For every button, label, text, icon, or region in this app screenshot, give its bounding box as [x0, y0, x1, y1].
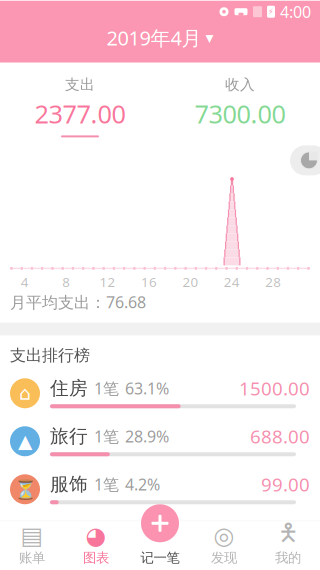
- staticText: ◕: [85, 522, 106, 549]
- button[interactable]: 🯅: [256, 521, 320, 569]
- staticText: 63.1%: [125, 378, 169, 399]
- staticText: 99.00: [261, 472, 310, 497]
- staticText: ⌂: [19, 383, 31, 404]
- button[interactable]: ◕: [64, 521, 128, 569]
- staticText: 688.00: [250, 424, 310, 449]
- staticText: 7300.00: [194, 97, 285, 130]
- staticText: 2019年4月: [106, 24, 201, 51]
- staticText: 8: [62, 273, 70, 291]
- staticText: 12: [100, 273, 116, 291]
- staticText: ⏳: [13, 479, 36, 500]
- staticText: 月平均支出：76.68: [10, 291, 146, 313]
- button[interactable]: ▲: [0, 417, 320, 465]
- button[interactable]: 记一笔: [138, 501, 182, 545]
- staticText: 图表: [83, 550, 109, 566]
- staticText: 旅行: [50, 425, 88, 448]
- staticText: 收入: [225, 76, 255, 94]
- staticText: 1笔: [94, 426, 119, 447]
- staticText: 4:00: [280, 1, 311, 22]
- staticText: 发现: [211, 550, 237, 566]
- staticText: 16: [141, 273, 157, 291]
- staticText: 记一笔: [140, 550, 179, 566]
- staticText: 2377.00: [34, 97, 125, 130]
- staticText: 🯅: [277, 516, 298, 555]
- staticText: ▲: [18, 431, 32, 452]
- staticText: 28.9%: [125, 426, 169, 447]
- button[interactable]: ◎: [192, 521, 256, 569]
- staticText: 服饰: [50, 473, 88, 496]
- button[interactable]: ⏳: [0, 465, 320, 513]
- staticText: ▤: [20, 522, 43, 549]
- staticText: ⚡︎: [268, 7, 274, 16]
- staticText: ▾: [205, 29, 213, 47]
- staticText: 支出排行榜: [10, 346, 90, 365]
- staticText: 账单: [19, 550, 45, 566]
- staticText: 住房: [50, 377, 88, 400]
- staticText: 1笔: [94, 378, 119, 399]
- staticText: 4: [21, 273, 29, 291]
- staticText: 24: [224, 273, 240, 291]
- staticText: 4.2%: [125, 474, 160, 495]
- staticText: 1笔: [94, 474, 119, 495]
- button[interactable]: ⌂: [0, 369, 320, 417]
- staticText: 28: [265, 273, 281, 291]
- button[interactable]: ▤: [0, 521, 64, 569]
- staticText: 支出: [65, 76, 95, 94]
- staticText: 我的: [275, 550, 301, 566]
- staticText: 1500.00: [239, 376, 310, 401]
- button[interactable]: 2019年4月: [96, 23, 223, 53]
- button[interactable]: 切换饼图: [290, 145, 320, 175]
- staticText: 20: [182, 273, 198, 291]
- staticText: ◎: [213, 522, 234, 549]
